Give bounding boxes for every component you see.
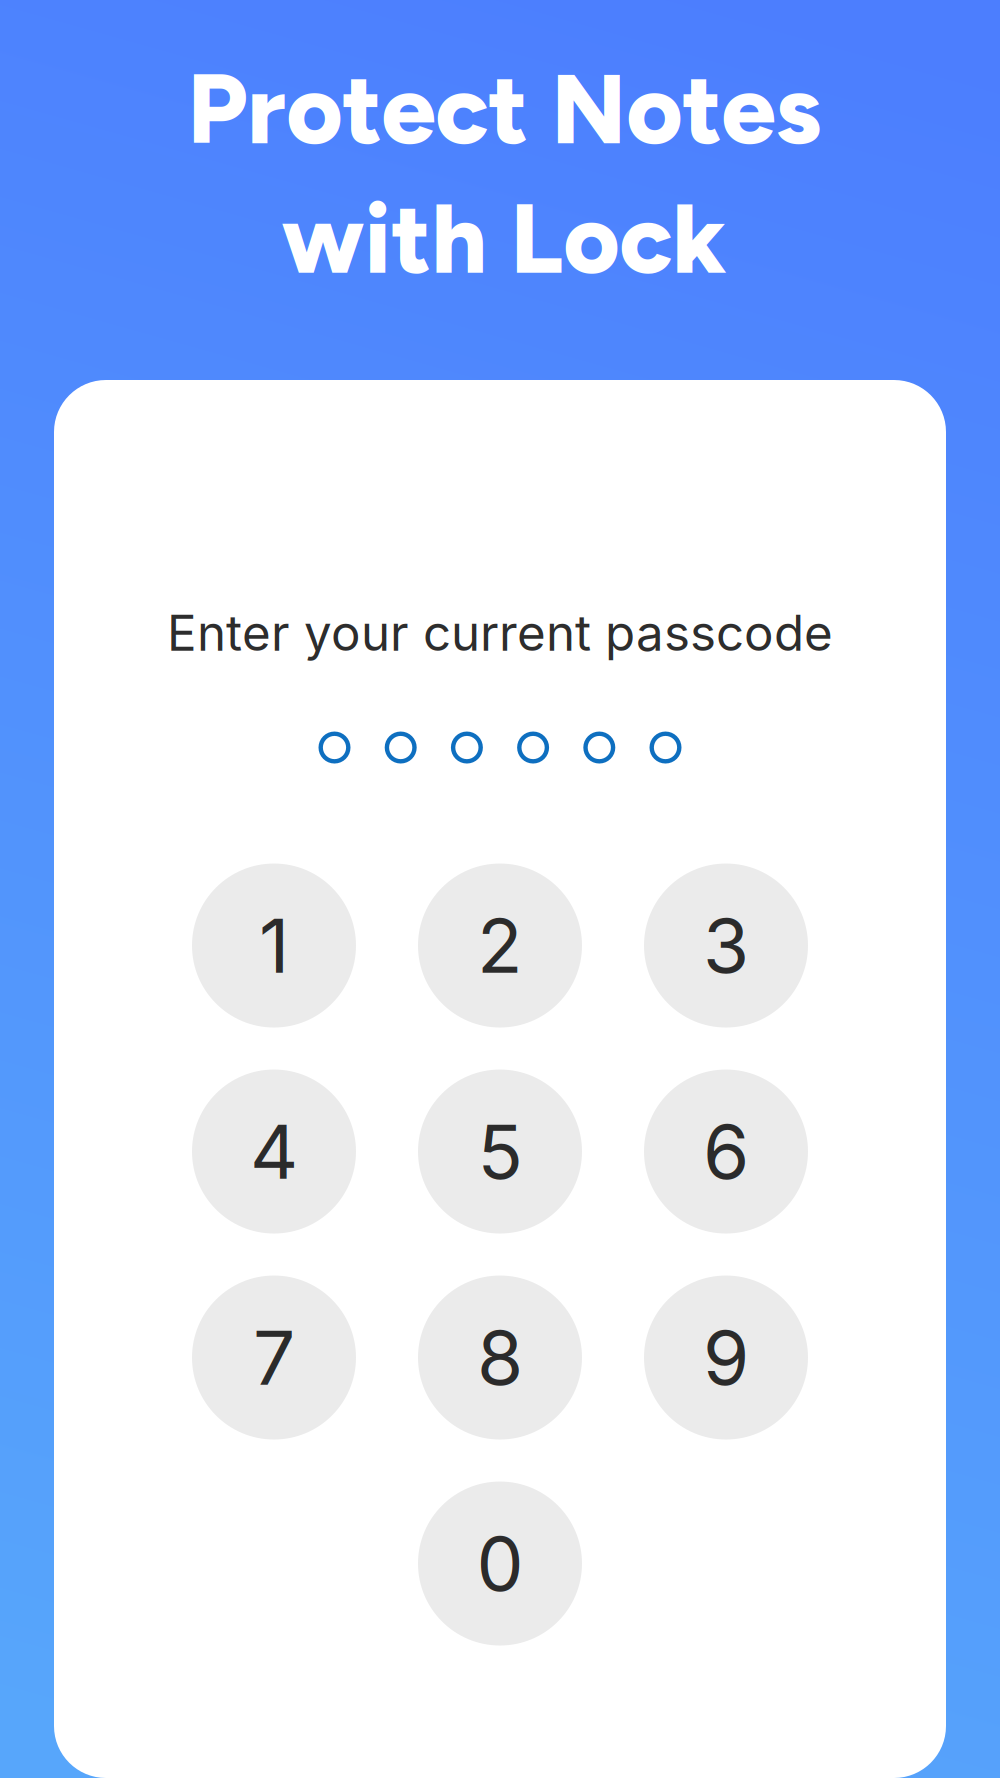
button[interactable]: 4 — [192, 1069, 356, 1233]
staticText: 7 — [253, 1312, 295, 1403]
staticText: 3 — [703, 900, 749, 991]
staticText: 5 — [477, 1106, 522, 1197]
button[interactable]: 2 — [418, 863, 582, 1027]
staticText: Enter your current passcode — [167, 603, 833, 662]
button[interactable]: 5 — [418, 1069, 582, 1233]
button[interactable]: 8 — [418, 1275, 582, 1439]
button[interactable]: 6 — [644, 1069, 808, 1233]
staticText: 6 — [703, 1106, 749, 1197]
button[interactable]: 9 — [644, 1275, 808, 1439]
staticText: 4 — [250, 1106, 298, 1197]
staticText: Protect Notes with Lock — [187, 51, 821, 297]
staticText: 2 — [477, 900, 523, 991]
button[interactable]: 7 — [192, 1275, 356, 1439]
button[interactable]: 0 — [418, 1481, 582, 1645]
staticText: 9 — [703, 1312, 749, 1403]
staticText: 8 — [477, 1312, 523, 1403]
staticText: 1 — [259, 900, 289, 991]
staticText: 0 — [476, 1518, 523, 1609]
button[interactable]: 3 — [644, 863, 808, 1027]
button[interactable]: 1 — [192, 863, 356, 1027]
